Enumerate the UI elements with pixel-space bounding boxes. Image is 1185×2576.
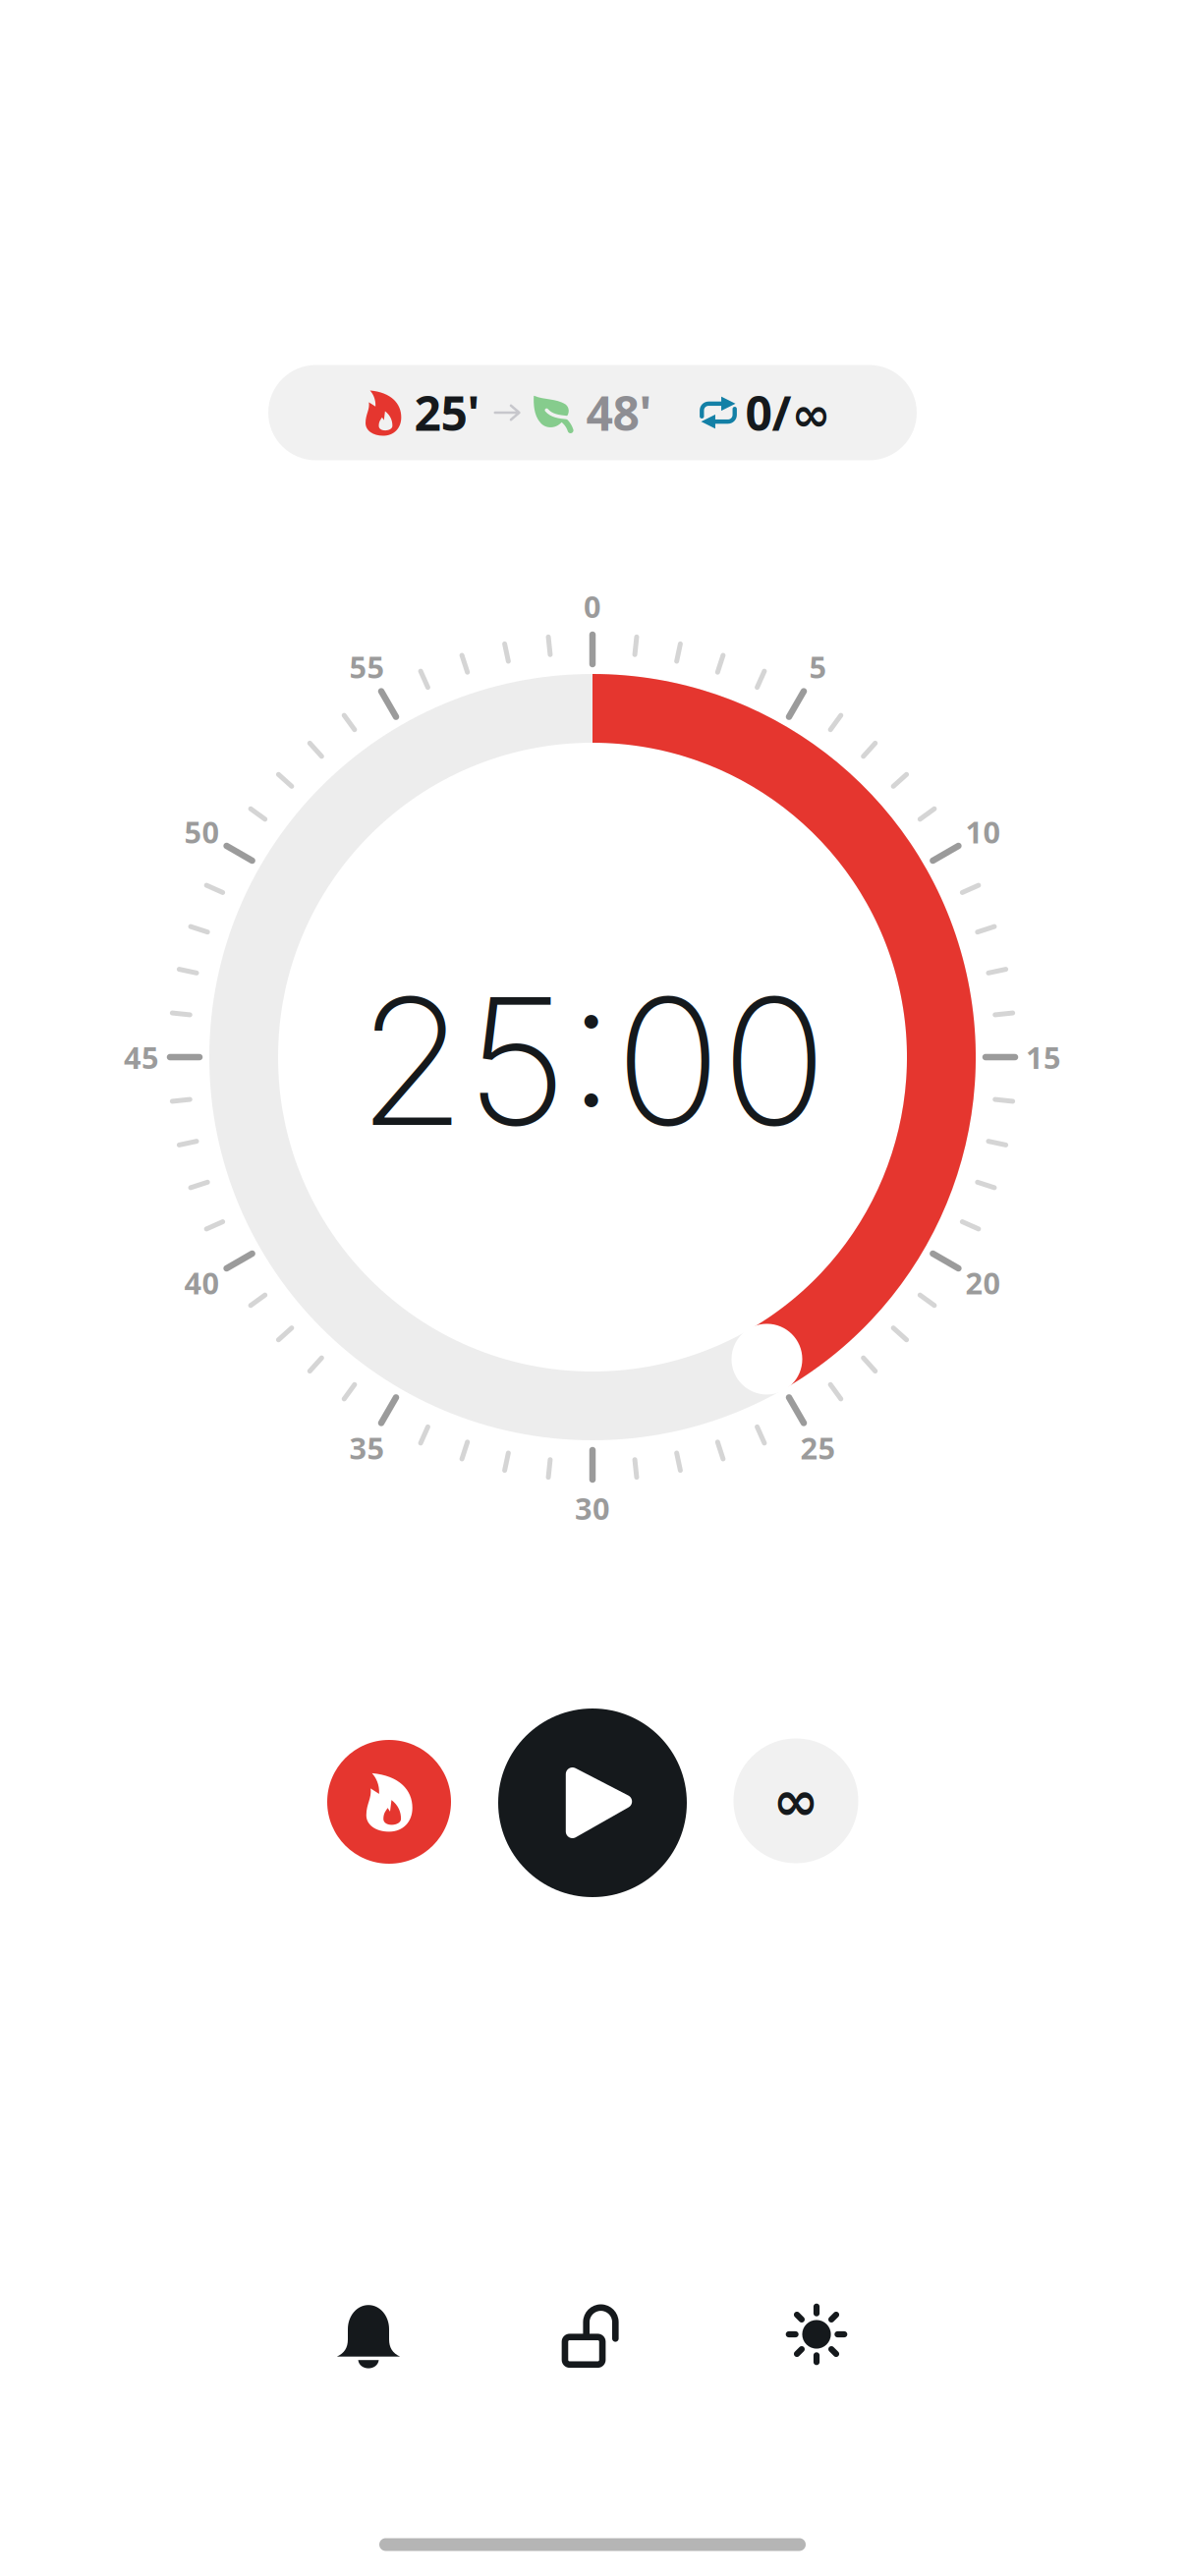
staticText: 10 (965, 812, 1001, 852)
staticText: 35 (349, 1428, 385, 1468)
staticText: 45 (124, 1037, 159, 1077)
staticText: 25:00 (358, 955, 827, 1167)
staticText: 15 (1026, 1037, 1061, 1077)
staticText: 55 (349, 647, 385, 687)
button[interactable]: Lock screen (534, 2273, 651, 2391)
staticText: 0/∞ (745, 381, 831, 444)
staticText: 25' (414, 381, 480, 444)
staticText: ∞ (773, 1770, 819, 1832)
button[interactable]: Alerts (310, 2276, 427, 2394)
button[interactable]: 25' (268, 365, 917, 460)
button[interactable]: Focus mode (327, 1740, 451, 1864)
staticText: 5 (809, 647, 827, 687)
staticText: 25 (800, 1428, 836, 1468)
staticText: 48' (586, 381, 652, 444)
button[interactable]: Repeat forever (734, 1738, 858, 1863)
staticText: 50 (184, 812, 220, 852)
staticText: 30 (575, 1488, 610, 1528)
button[interactable]: Brightness (758, 2275, 875, 2393)
staticText: 20 (965, 1263, 1001, 1303)
button[interactable]: Start timer (498, 1708, 687, 1897)
staticText: 0 (584, 586, 601, 626)
staticText: 40 (184, 1263, 220, 1303)
